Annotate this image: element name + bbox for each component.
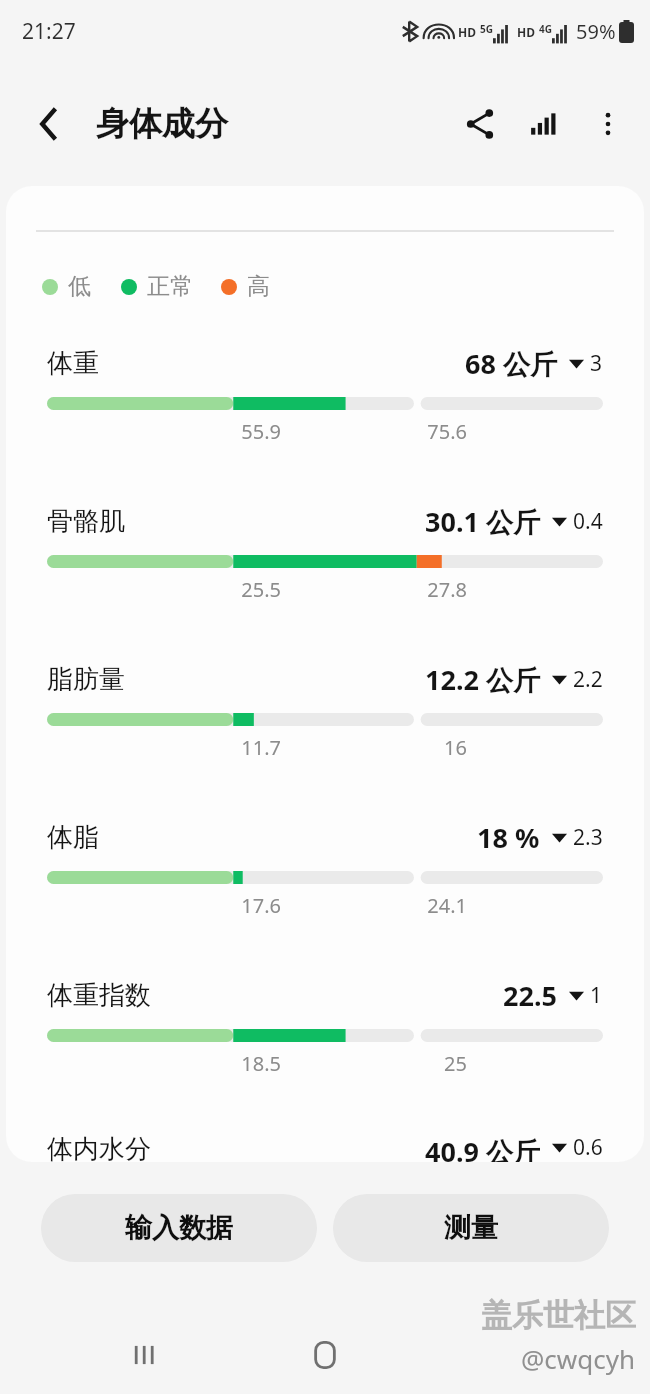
staticText: 体重指数 bbox=[47, 979, 151, 1012]
button[interactable]: Home bbox=[290, 1320, 360, 1390]
staticText: 30.1 公斤 bbox=[425, 503, 540, 540]
staticText: 0.6 bbox=[573, 1133, 603, 1162]
button[interactable]: Share bbox=[448, 92, 512, 156]
staticText: 4G bbox=[539, 22, 552, 36]
staticText: 22.5 bbox=[503, 977, 557, 1014]
staticText: 测量 bbox=[444, 1211, 498, 1245]
staticText: 3 bbox=[590, 349, 603, 378]
staticText: 骨骼肌 bbox=[47, 505, 125, 538]
staticText: 25 bbox=[47, 1050, 467, 1077]
staticText: 盖乐世社区 bbox=[481, 1296, 636, 1335]
staticText: 21:27 bbox=[22, 17, 76, 46]
staticText: 脂肪量 bbox=[47, 663, 125, 696]
button[interactable]: Chart bbox=[512, 92, 576, 156]
staticText: 5G bbox=[480, 22, 493, 36]
staticText: HD bbox=[458, 24, 476, 40]
staticText: 输入数据 bbox=[125, 1211, 233, 1245]
staticText: 25.5 bbox=[47, 576, 281, 603]
staticText: 2.2 bbox=[573, 665, 603, 694]
staticText: 68 公斤 bbox=[465, 345, 557, 382]
staticText: 12.2 公斤 bbox=[425, 661, 540, 698]
staticText: 体重 bbox=[47, 347, 99, 380]
staticText: 17.6 bbox=[47, 892, 281, 919]
staticText: HD bbox=[517, 24, 535, 40]
staticText: 正常 bbox=[147, 272, 193, 301]
staticText: 59% bbox=[576, 18, 616, 45]
staticText: 24.1 bbox=[47, 892, 467, 919]
staticText: 体脂 bbox=[47, 821, 99, 854]
staticText: 11.7 bbox=[47, 734, 281, 761]
staticText: 身体成分 bbox=[96, 103, 228, 145]
staticText: 体内水分 bbox=[47, 1133, 151, 1162]
button[interactable]: Recents bbox=[110, 1320, 180, 1390]
staticText: @cwqcyh bbox=[521, 1341, 636, 1376]
staticText: 16 bbox=[47, 734, 467, 761]
staticText: 2.3 bbox=[573, 823, 603, 852]
button[interactable]: 测量 bbox=[333, 1194, 609, 1262]
staticText: 75.6 bbox=[47, 418, 467, 445]
staticText: 低 bbox=[68, 272, 91, 301]
staticText: 高 bbox=[247, 272, 270, 301]
staticText: 55.9 bbox=[47, 418, 281, 445]
button[interactable]: Back bbox=[22, 97, 76, 151]
staticText: 18.5 bbox=[47, 1050, 281, 1077]
staticText: 40.9 公斤 bbox=[425, 1133, 540, 1162]
button[interactable]: 输入数据 bbox=[41, 1194, 317, 1262]
staticText: 27.8 bbox=[47, 576, 467, 603]
staticText: 0.4 bbox=[573, 507, 603, 536]
staticText: 1 bbox=[590, 981, 603, 1010]
button[interactable]: More options bbox=[576, 92, 640, 156]
staticText: 18 % bbox=[477, 819, 540, 856]
